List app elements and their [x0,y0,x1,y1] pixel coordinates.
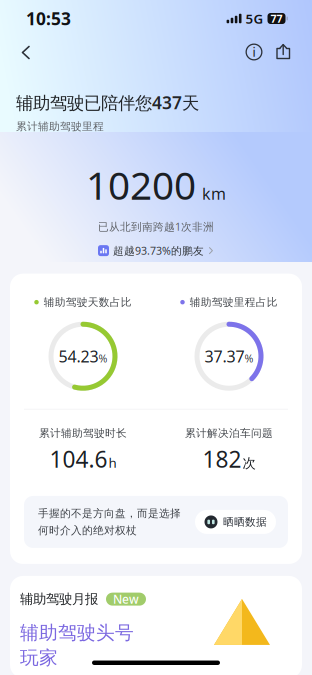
staticText: 次 [242,455,255,471]
staticText: 累计解决泊车问题 [185,427,273,440]
staticText: % [98,351,107,365]
button[interactable]: 超越93.73%的鹏友 [94,243,218,259]
staticText: New [113,591,139,607]
staticText: 手握的不是方向盘，而是选择 [38,507,181,520]
staticText: 超越93.73%的鹏友 [113,244,204,258]
staticText: 玩家 [20,646,58,669]
staticText: 54.23 [58,346,98,367]
staticText: % [244,351,253,365]
staticText: 10200 [86,159,196,210]
staticText: 辅助驾驶里程占比 [190,296,278,309]
staticText: 104.6 [49,444,107,474]
button[interactable]: Share [270,37,298,67]
button[interactable]: 晒晒数据 [195,510,276,534]
staticText: 何时介入的绝对权杖 [38,524,137,537]
staticText: 辅助驾驶已陪伴您437天 [16,91,199,114]
staticText: 累计辅助驾驶里程 [16,120,104,133]
staticText: km [202,183,226,204]
staticText: 晒晒数据 [223,515,267,528]
staticText: 182 [202,444,241,474]
staticText: 77 [270,11,282,26]
button[interactable]: Back [9,37,41,67]
staticText: 已从北到南跨越1次非洲 [98,219,214,234]
staticText: 辅助驾驶天数占比 [44,296,132,309]
staticText: i [252,44,255,60]
staticText: 辅助驾驶月报 [20,591,98,607]
staticText: 37.37 [204,346,244,367]
staticText: 5G [245,10,263,27]
staticText: 辅助驾驶头号 [20,621,134,644]
button[interactable]: Information [240,37,268,67]
staticText: h [108,454,116,471]
staticText: 累计辅助驾驶时长 [39,427,127,440]
staticText: 10:53 [26,7,71,30]
